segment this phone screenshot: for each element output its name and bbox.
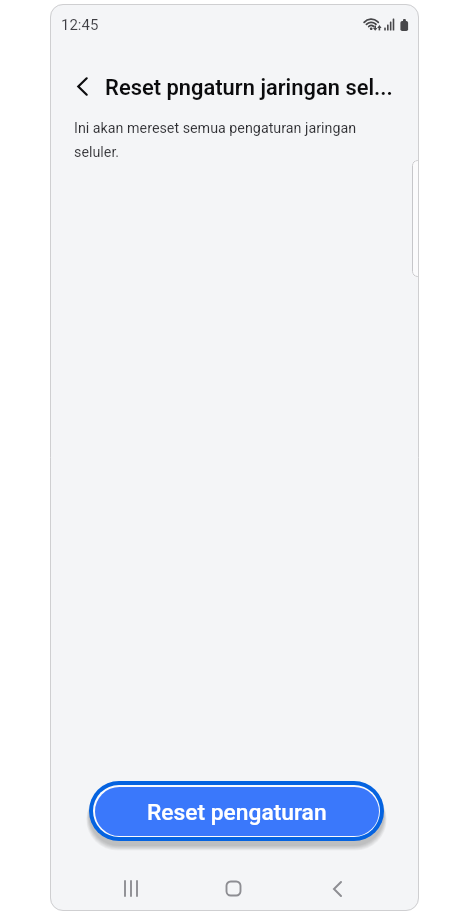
button[interactable]: Navigate up [64,68,102,106]
staticText: Ini akan mereset semua pengaturan jaring… [74,120,364,160]
staticText: Reset pngaturn jaringan sel... [105,75,393,101]
staticText: Reset pengaturan [147,799,327,826]
button[interactable]: Home [211,866,256,911]
staticText: 12:45 [61,16,99,34]
button[interactable]: Reset pengaturan [89,781,384,841]
button[interactable]: Recent apps [108,866,153,911]
button[interactable]: Back [315,866,360,911]
